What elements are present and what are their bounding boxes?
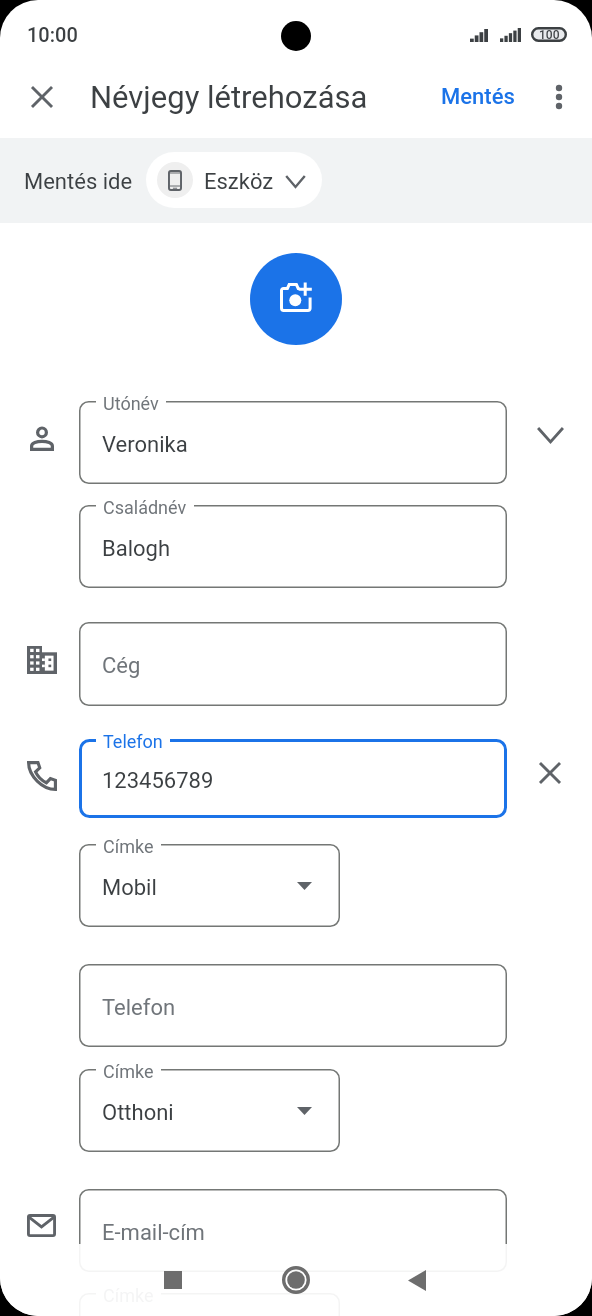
button[interactable]: Back	[393, 1256, 441, 1304]
staticText: Telefon	[102, 995, 176, 1021]
staticText: Mentés	[441, 84, 515, 110]
button[interactable]: Mobil	[79, 844, 340, 927]
staticText: Mobil	[102, 875, 157, 901]
staticText: Balogh	[102, 536, 171, 562]
staticText: Címke	[103, 1061, 154, 1082]
button[interactable]: 123456789	[79, 739, 507, 818]
button[interactable]: Clear phone number	[526, 749, 574, 797]
button[interactable]: Otthoni	[79, 1069, 340, 1152]
button[interactable]: Home	[272, 1256, 320, 1304]
staticText: Cég	[102, 653, 141, 679]
staticText: Névjegy létrehozása	[90, 79, 368, 115]
button[interactable]: Balogh	[79, 505, 507, 588]
button[interactable]: Mentés	[430, 75, 526, 119]
staticText: Címke	[103, 1285, 154, 1306]
staticText: Címke	[103, 836, 154, 857]
button[interactable]: More options	[535, 73, 583, 121]
staticText: Otthoni	[102, 1100, 174, 1126]
staticText: 123456789	[102, 768, 214, 794]
button[interactable]: Eszköz	[146, 152, 322, 208]
button[interactable]: Otthoni	[79, 1293, 340, 1316]
staticText: E-mail-cím	[102, 1220, 205, 1246]
button[interactable]: Cég	[79, 622, 507, 706]
staticText: 100	[539, 28, 560, 42]
staticText: Veronika	[102, 432, 188, 458]
staticText: 10:00	[27, 23, 78, 46]
button[interactable]: Veronika	[79, 401, 507, 484]
button[interactable]: Recents	[149, 1256, 197, 1304]
staticText: Családnév	[103, 497, 187, 518]
button[interactable]: Expand name fields	[526, 411, 574, 459]
staticText: Telefon	[103, 731, 163, 752]
button[interactable]: Telefon	[79, 964, 507, 1047]
button[interactable]: E-mail-cím	[79, 1189, 507, 1272]
button[interactable]: Close	[18, 73, 66, 121]
staticText: Mentés ide	[24, 169, 133, 195]
staticText: Eszköz	[204, 169, 274, 195]
staticText: Utónév	[103, 393, 159, 414]
button[interactable]: Add photo	[250, 253, 342, 345]
